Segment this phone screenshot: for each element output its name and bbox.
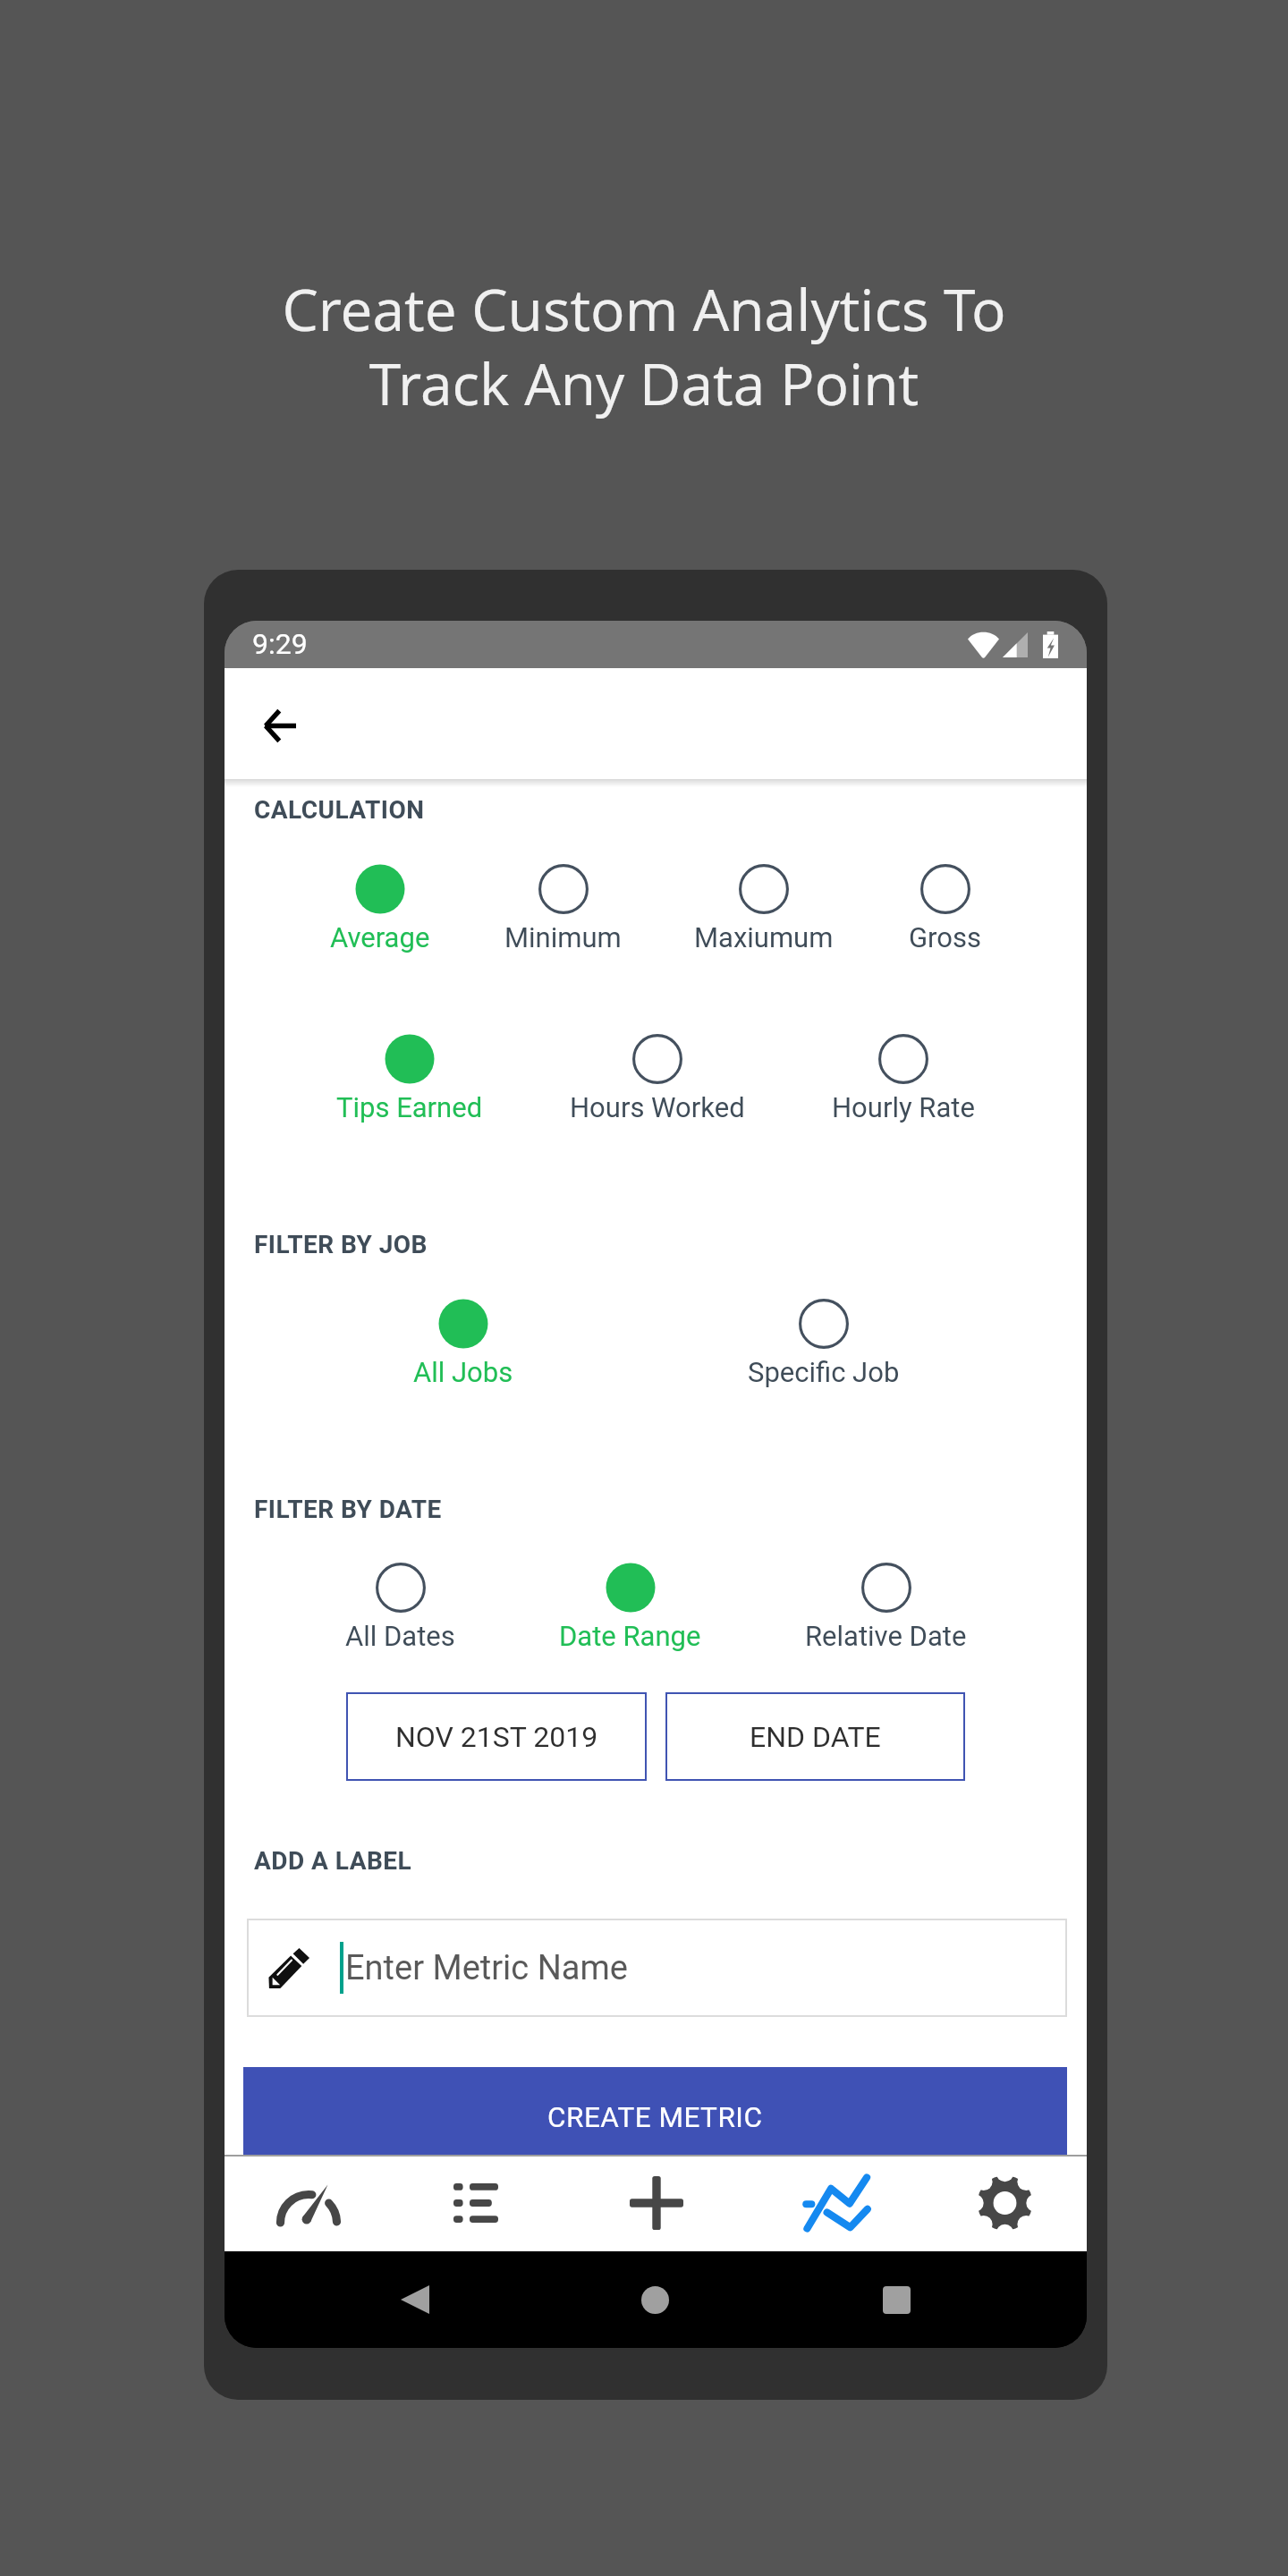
staticText: Create Custom Analytics To Track Any Dat… xyxy=(0,270,1288,422)
button[interactable]: CREATE METRIC xyxy=(243,2067,1067,2167)
button[interactable]: Enter Metric Name xyxy=(247,1919,1067,2017)
button[interactable]: All Dates xyxy=(345,1563,455,1652)
staticText: ADD A LABEL xyxy=(254,1846,412,1876)
button[interactable]: Hours Worked xyxy=(570,1034,745,1123)
staticText: Minimum xyxy=(504,921,622,953)
staticText: All Jobs xyxy=(413,1356,513,1388)
staticText: Hours Worked xyxy=(570,1091,745,1123)
staticText: Specific Job xyxy=(748,1356,900,1388)
staticText: Hourly Rate xyxy=(832,1091,975,1123)
button[interactable]: Home xyxy=(614,2251,695,2348)
staticText: 9:29 xyxy=(252,627,308,661)
staticText: Date Range xyxy=(559,1620,701,1652)
button[interactable]: Back xyxy=(375,2251,455,2348)
button[interactable]: Tips Earned xyxy=(336,1034,483,1123)
button[interactable]: Entries xyxy=(394,2155,566,2251)
staticText: CREATE METRIC xyxy=(547,2101,763,2134)
button[interactable]: Specific Job xyxy=(748,1299,900,1388)
staticText: NOV 21ST 2019 xyxy=(395,1720,598,1754)
staticText: Gross xyxy=(909,921,981,953)
button[interactable]: Back xyxy=(248,693,312,758)
staticText: Enter Metric Name xyxy=(345,1948,628,1988)
button[interactable]: Average xyxy=(330,864,430,953)
button[interactable]: Minimum xyxy=(504,864,622,953)
button[interactable]: Gross xyxy=(909,864,981,953)
button[interactable]: END DATE xyxy=(665,1692,965,1781)
button[interactable]: All Jobs xyxy=(413,1299,513,1388)
button[interactable]: Maxiumum xyxy=(694,864,834,953)
staticText: FILTER BY DATE xyxy=(254,1495,442,1524)
button[interactable]: Relative Date xyxy=(805,1563,967,1652)
button[interactable]: Date Range xyxy=(559,1563,701,1652)
button[interactable]: Hourly Rate xyxy=(832,1034,975,1123)
button[interactable]: NOV 21ST 2019 xyxy=(346,1692,647,1781)
staticText: Tips Earned xyxy=(336,1091,483,1123)
staticText: Relative Date xyxy=(805,1620,967,1652)
button[interactable]: Recents xyxy=(856,2251,936,2348)
staticText: CALCULATION xyxy=(254,795,425,825)
staticText: FILTER BY JOB xyxy=(254,1230,428,1259)
button[interactable]: Analytics xyxy=(742,2155,915,2251)
staticText: Maxiumum xyxy=(694,921,834,953)
staticText: Average xyxy=(330,921,430,953)
button[interactable]: Settings xyxy=(918,2155,1087,2251)
staticText: All Dates xyxy=(345,1620,455,1652)
button[interactable]: Dashboard xyxy=(225,2155,397,2251)
button[interactable]: Add xyxy=(570,2155,742,2251)
staticText: END DATE xyxy=(750,1720,881,1754)
